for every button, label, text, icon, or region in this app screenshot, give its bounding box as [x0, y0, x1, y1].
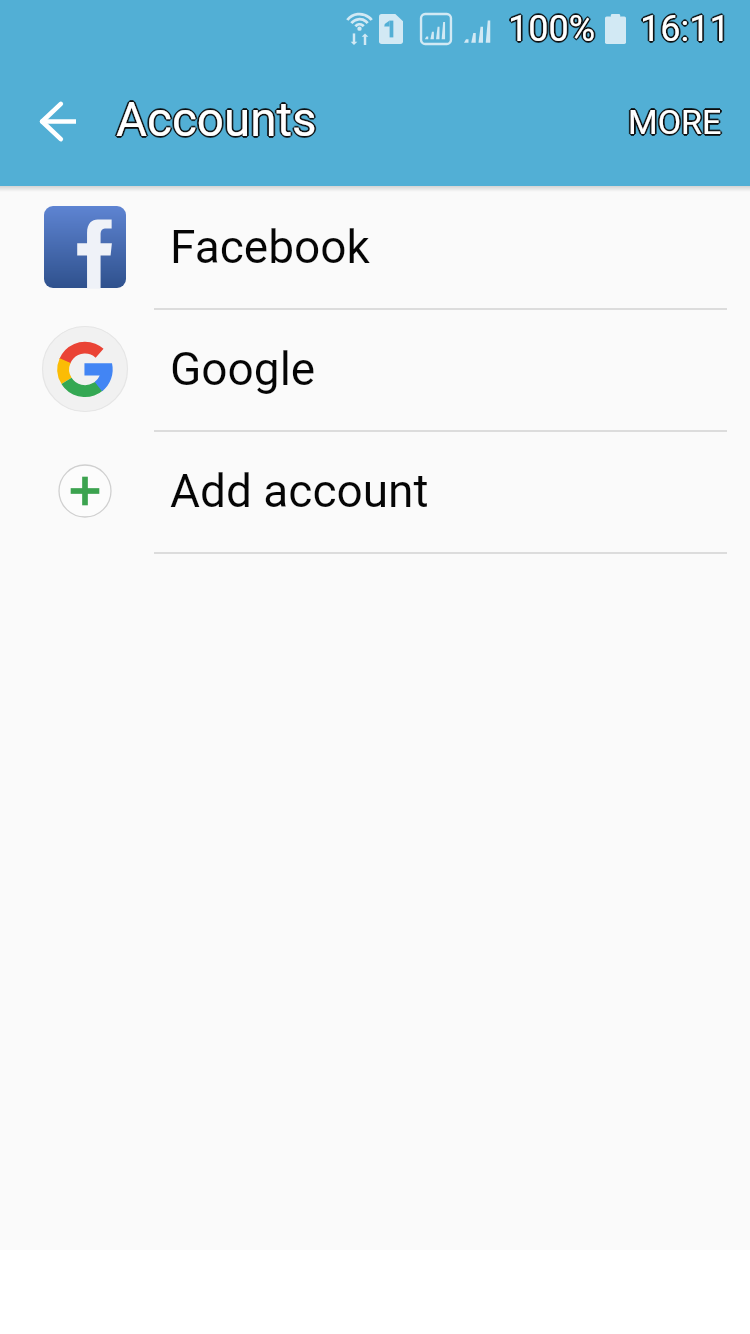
staticText: 100% — [508, 10, 596, 52]
staticText: 100% — [509, 9, 597, 51]
staticText: MORE — [628, 104, 722, 144]
staticText: 16:11 — [641, 7, 731, 49]
staticText: MORE — [628, 100, 722, 140]
staticText: 16:11 — [640, 10, 730, 52]
staticText: Accounts — [116, 94, 317, 150]
staticText: 16:11 — [640, 8, 730, 50]
staticText: 16:11 — [639, 7, 729, 49]
staticText: MORE — [628, 102, 722, 142]
staticText: Facebook — [170, 220, 370, 274]
staticText: 100% — [506, 8, 594, 50]
staticText: 100% — [507, 9, 595, 51]
staticText: Accounts — [118, 92, 319, 148]
button[interactable]: Facebook — [0, 188, 750, 310]
staticText: 16:11 — [641, 9, 731, 51]
staticText: Accounts — [117, 93, 318, 149]
staticText: Accounts — [114, 92, 315, 148]
staticText: Accounts — [115, 93, 316, 149]
button[interactable]: Add account — [0, 432, 750, 554]
staticText: Accounts — [117, 91, 318, 147]
staticText: 100% — [508, 8, 596, 50]
staticText: MORE — [626, 102, 720, 142]
staticText: Accounts — [116, 90, 317, 146]
staticText: 100% — [509, 7, 597, 49]
staticText: MORE — [629, 103, 723, 143]
button[interactable]: Google — [0, 310, 750, 432]
staticText: 16:11 — [638, 8, 728, 50]
staticText: 16:11 — [639, 9, 729, 51]
staticText: MORE — [629, 101, 723, 141]
staticText: Accounts — [116, 92, 317, 148]
staticText: 100% — [510, 8, 598, 50]
staticText: MORE — [630, 102, 724, 142]
staticText: MORE — [627, 103, 721, 143]
staticText: 16:11 — [642, 8, 732, 50]
staticText: Accounts — [115, 91, 316, 147]
staticText: MORE — [627, 101, 721, 141]
staticText: 100% — [508, 6, 596, 48]
staticText: Google — [170, 342, 316, 396]
staticText: 16:11 — [640, 6, 730, 48]
staticText: 100% — [507, 7, 595, 49]
button[interactable]: MORE — [618, 88, 732, 156]
staticText: Add account — [170, 464, 429, 518]
button[interactable]: Back — [17, 81, 97, 161]
